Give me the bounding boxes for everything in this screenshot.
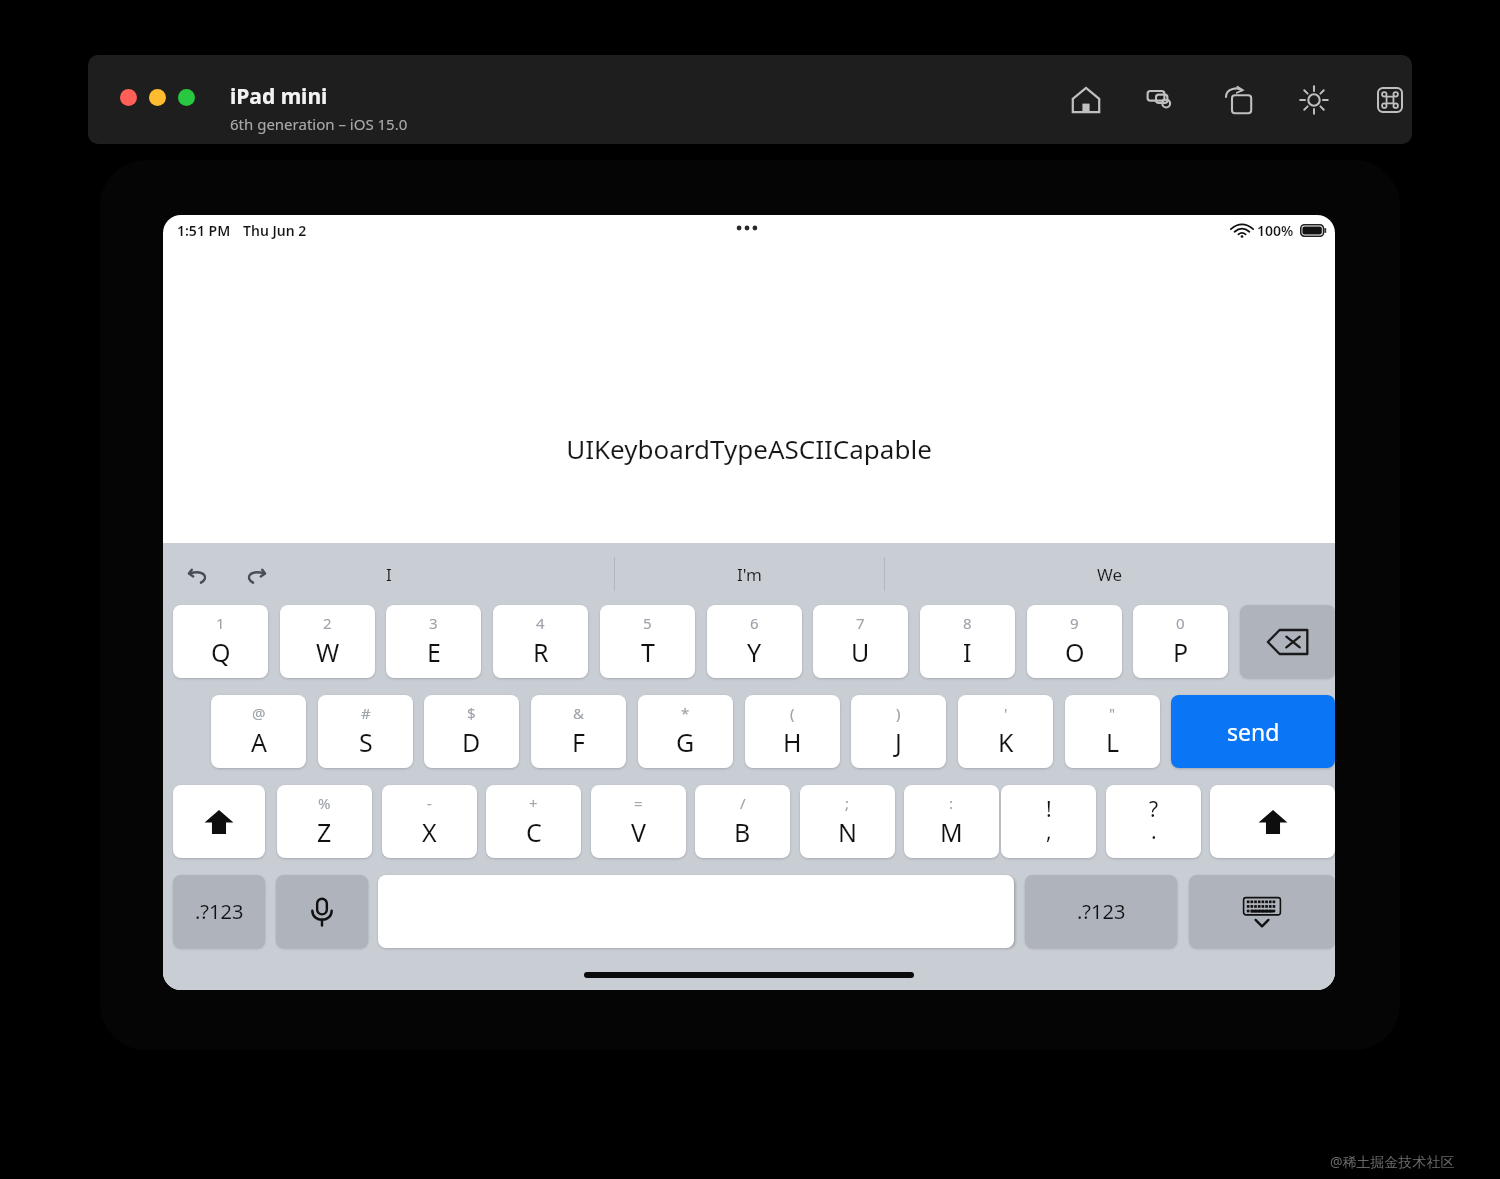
button[interactable]: & bbox=[531, 695, 626, 768]
button[interactable]: Hide keyboard bbox=[1189, 875, 1335, 948]
staticText: N bbox=[838, 815, 858, 849]
button[interactable]: 7 bbox=[813, 605, 908, 678]
button[interactable]: 6 bbox=[707, 605, 802, 678]
staticText: ; bbox=[845, 793, 850, 813]
button[interactable]: .?123 bbox=[1025, 875, 1177, 948]
button[interactable]: Rotate bbox=[1215, 77, 1261, 123]
staticText: ) bbox=[896, 703, 901, 723]
staticText: Thu Jun 2 bbox=[243, 221, 307, 240]
button[interactable]: Undo bbox=[181, 557, 217, 593]
staticText: K bbox=[998, 725, 1014, 759]
staticText: .?123 bbox=[1077, 898, 1126, 925]
staticText: $ bbox=[467, 703, 476, 723]
button[interactable]: / bbox=[695, 785, 790, 858]
button[interactable]: Home bbox=[1063, 77, 1109, 123]
staticText: P bbox=[1173, 635, 1189, 669]
staticText: 4 bbox=[536, 613, 545, 633]
staticText: I bbox=[963, 635, 972, 669]
button[interactable]: = bbox=[591, 785, 686, 858]
staticText: UIKeyboardTypeASCIICapable bbox=[163, 431, 1335, 466]
button[interactable]: $ bbox=[424, 695, 519, 768]
button[interactable]: We bbox=[884, 543, 1335, 605]
button[interactable]: 5 bbox=[600, 605, 695, 678]
button[interactable]: Keyboard shortcuts bbox=[1367, 77, 1412, 123]
button[interactable]: Zoom bbox=[178, 89, 195, 106]
button[interactable]: ? bbox=[1106, 785, 1201, 858]
staticText: R bbox=[533, 635, 549, 669]
staticText: W bbox=[316, 635, 340, 669]
button[interactable]: ) bbox=[851, 695, 946, 768]
button[interactable]: I'm bbox=[614, 543, 884, 605]
staticText: & bbox=[573, 703, 584, 723]
staticText: X bbox=[422, 815, 437, 849]
staticText: D bbox=[462, 725, 481, 759]
button[interactable]: 8 bbox=[920, 605, 1015, 678]
staticText: G bbox=[676, 725, 695, 759]
button[interactable]: " bbox=[1065, 695, 1160, 768]
button[interactable]: 4 bbox=[493, 605, 588, 678]
staticText: 1 bbox=[216, 613, 225, 633]
button[interactable]: Close bbox=[120, 89, 137, 106]
button[interactable]: 2 bbox=[280, 605, 375, 678]
button[interactable]: Dictation bbox=[276, 875, 368, 948]
button[interactable]: Shift bbox=[1210, 785, 1335, 858]
staticText: @稀土掘金技术社区 bbox=[1330, 1152, 1455, 1171]
button[interactable]: # bbox=[318, 695, 413, 768]
staticText: E bbox=[427, 635, 441, 669]
staticText: M bbox=[940, 815, 963, 849]
button[interactable]: ; bbox=[800, 785, 895, 858]
button[interactable]: ( bbox=[745, 695, 840, 768]
staticText: 8 bbox=[963, 613, 972, 633]
staticText: I'm bbox=[737, 563, 762, 586]
staticText: = bbox=[634, 793, 643, 813]
button[interactable]: Redo bbox=[237, 557, 273, 593]
staticText: " bbox=[1109, 703, 1116, 723]
staticText: * bbox=[681, 703, 690, 723]
button[interactable]: - bbox=[382, 785, 477, 858]
staticText: , bbox=[1046, 817, 1052, 846]
button[interactable]: ! bbox=[1001, 785, 1096, 858]
button[interactable]: .?123 bbox=[173, 875, 265, 948]
staticText: 6 bbox=[750, 613, 759, 633]
button[interactable]: ' bbox=[958, 695, 1053, 768]
staticText: 5 bbox=[643, 613, 652, 633]
button[interactable]: * bbox=[638, 695, 733, 768]
staticText: - bbox=[427, 793, 432, 813]
staticText: A bbox=[251, 725, 267, 759]
button[interactable]: Appearance bbox=[1291, 77, 1337, 123]
button[interactable]: Screenshot bbox=[1139, 77, 1185, 123]
staticText: Q bbox=[211, 635, 231, 669]
button[interactable]: I bbox=[163, 543, 614, 605]
staticText: We bbox=[1097, 563, 1123, 586]
button[interactable]: Backspace bbox=[1240, 605, 1335, 678]
button[interactable]: : bbox=[904, 785, 999, 858]
staticText: H bbox=[783, 725, 802, 759]
button[interactable]: 1 bbox=[173, 605, 268, 678]
staticText: O bbox=[1065, 635, 1085, 669]
button[interactable]: Shift bbox=[173, 785, 265, 858]
button[interactable]: % bbox=[277, 785, 372, 858]
staticText: S bbox=[359, 725, 373, 759]
staticText: V bbox=[631, 815, 647, 849]
button[interactable]: Minimize bbox=[149, 89, 166, 106]
staticText: 7 bbox=[856, 613, 865, 633]
staticText: % bbox=[318, 793, 331, 813]
staticText: # bbox=[361, 703, 371, 723]
button[interactable]: @ bbox=[211, 695, 306, 768]
staticText: 0 bbox=[1176, 613, 1185, 633]
button[interactable]: 3 bbox=[386, 605, 481, 678]
staticText: . bbox=[1151, 817, 1157, 846]
button[interactable]: 9 bbox=[1027, 605, 1122, 678]
staticText: 3 bbox=[429, 613, 438, 633]
button[interactable]: 0 bbox=[1133, 605, 1228, 678]
staticText: F bbox=[572, 725, 585, 759]
button[interactable]: send bbox=[1171, 695, 1335, 768]
staticText: 1:51 PM bbox=[177, 221, 231, 240]
staticText: C bbox=[526, 815, 542, 849]
button[interactable]: + bbox=[486, 785, 581, 858]
staticText: U bbox=[851, 635, 870, 669]
staticText: / bbox=[740, 793, 746, 813]
staticText: I bbox=[386, 563, 392, 586]
staticText: send bbox=[1227, 716, 1280, 747]
